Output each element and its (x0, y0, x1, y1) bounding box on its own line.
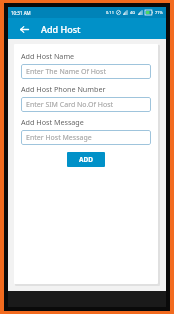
staticText: Add Host Phone Number (21, 84, 106, 94)
button[interactable]: Enter Host Message (21, 130, 151, 145)
staticText: Add Host Name (21, 51, 75, 61)
button[interactable]: Enter The Name Of Host (21, 64, 151, 79)
staticText: 4G (130, 10, 136, 15)
button[interactable]: Enter SIM Card No.Of Host (21, 97, 151, 112)
staticText: Add Host (41, 23, 81, 35)
button[interactable]: Back (17, 22, 31, 36)
staticText: Enter Host Message (26, 133, 92, 143)
staticText: Add Host Message (21, 117, 84, 127)
button[interactable]: ADD (67, 152, 105, 167)
staticText: 0.11 (106, 10, 114, 15)
staticText: ADD (79, 155, 94, 164)
staticText: Enter SIM Card No.Of Host (26, 100, 114, 110)
staticText: Enter The Name Of Host (26, 67, 106, 77)
staticText: 71% (155, 10, 163, 15)
staticText: 10:31 AM (11, 10, 31, 16)
